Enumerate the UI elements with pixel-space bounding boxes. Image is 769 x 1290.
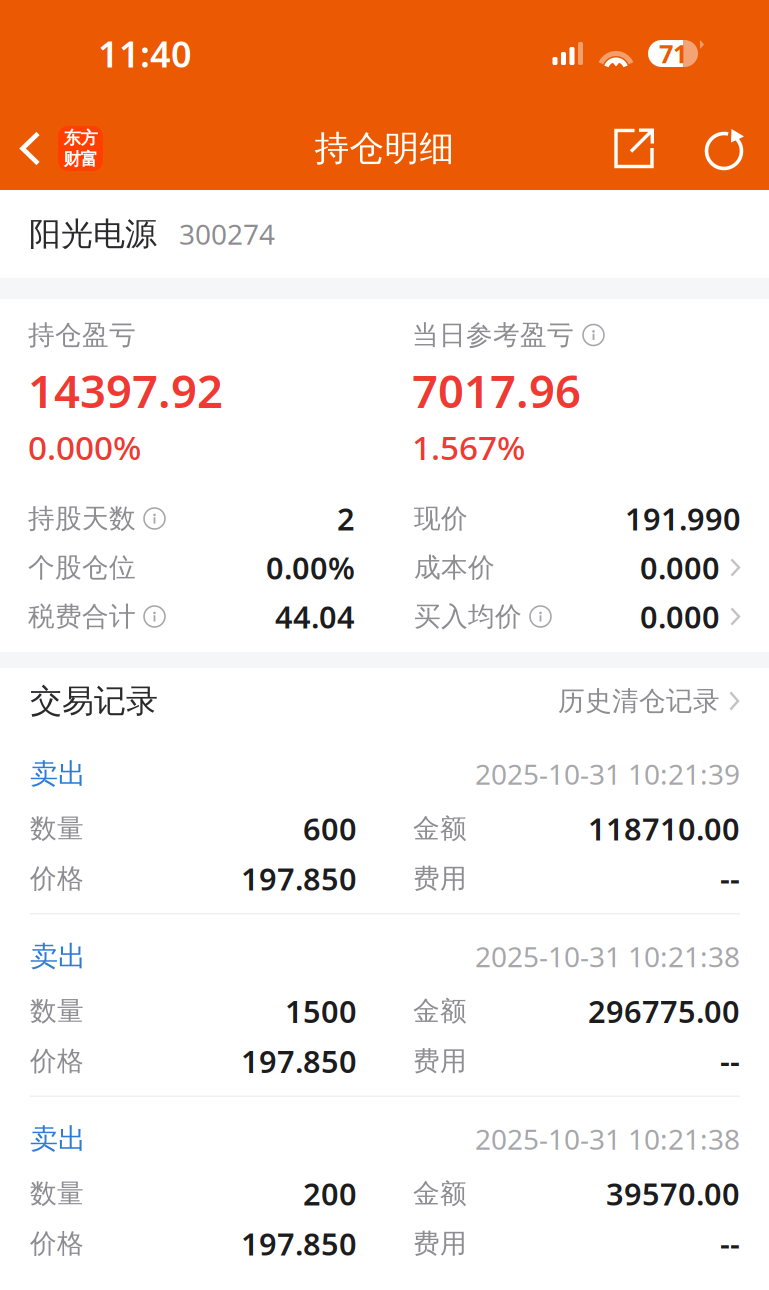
staticText: 费用 xyxy=(413,1045,467,1077)
staticText: 费用 xyxy=(413,1227,467,1260)
staticText: 金额 xyxy=(413,995,467,1027)
staticText: -- xyxy=(720,1223,740,1264)
button[interactable]: 返回 东方财富 xyxy=(0,106,119,190)
staticText: -- xyxy=(720,1041,740,1081)
staticText: 价格 xyxy=(30,862,84,895)
staticText: 200 xyxy=(303,1173,357,1214)
staticText: -- xyxy=(720,858,740,899)
staticText: 2025-10-31 10:21:38 xyxy=(475,938,740,975)
staticText: 191.990 xyxy=(625,498,741,539)
staticText: 持仓明细 xyxy=(314,127,454,170)
staticText: 0.000 xyxy=(640,547,720,588)
staticText: 300274 xyxy=(179,215,275,253)
staticText: 持股天数 xyxy=(28,502,136,535)
button[interactable]: 分享 xyxy=(587,106,681,190)
staticText: 财富 xyxy=(63,148,97,170)
staticText: 2025-10-31 10:21:38 xyxy=(475,1120,740,1158)
staticText: 金额 xyxy=(413,812,467,845)
staticText: 0.00% xyxy=(266,547,355,588)
staticText: 2 xyxy=(337,498,355,539)
button[interactable]: 买入均价 xyxy=(414,592,741,641)
staticText: 买入均价 xyxy=(414,600,522,633)
staticText: 当日参考盈亏 xyxy=(412,319,574,351)
button[interactable]: 成本价 xyxy=(414,543,741,592)
button[interactable]: 历史清仓记录 xyxy=(558,685,740,717)
staticText: 历史清仓记录 xyxy=(558,685,720,717)
staticText: 44.04 xyxy=(275,596,355,637)
staticText: 71 xyxy=(659,37,687,70)
staticText: 东方 xyxy=(63,127,97,148)
staticText: 个股仓位 xyxy=(28,551,136,584)
staticText: 数量 xyxy=(30,995,84,1027)
staticText: 费用 xyxy=(413,862,467,895)
staticText: 1500 xyxy=(285,991,357,1031)
staticText: 成本价 xyxy=(414,551,495,584)
staticText: 0.000 xyxy=(640,596,720,637)
staticText: 7017.96 xyxy=(412,360,581,421)
staticText: 197.850 xyxy=(241,1041,357,1081)
staticText: 税费合计 xyxy=(28,600,136,633)
staticText: 600 xyxy=(303,808,357,849)
staticText: 数量 xyxy=(30,1177,84,1210)
button[interactable]: 刷新 xyxy=(681,106,767,190)
staticText: 价格 xyxy=(30,1227,84,1260)
staticText: 1.567% xyxy=(412,425,525,469)
staticText: 11:40 xyxy=(98,30,192,77)
staticText: 197.850 xyxy=(241,858,357,899)
staticText: 现价 xyxy=(414,502,468,535)
staticText: 卖出 xyxy=(30,939,86,974)
staticText: 39570.00 xyxy=(606,1173,740,1214)
staticText: 价格 xyxy=(30,1045,84,1077)
staticText: 118710.00 xyxy=(588,808,740,849)
staticText: 2025-10-31 10:21:39 xyxy=(475,755,740,793)
staticText: 持仓盈亏 xyxy=(28,319,136,351)
staticText: 0.000% xyxy=(28,425,141,469)
staticText: 金额 xyxy=(413,1177,467,1210)
staticText: 14397.92 xyxy=(28,360,223,421)
staticText: 交易记录 xyxy=(30,681,158,721)
staticText: 卖出 xyxy=(30,1122,86,1156)
staticText: 卖出 xyxy=(30,757,86,791)
staticText: 296775.00 xyxy=(588,991,740,1031)
staticText: 阳光电源 xyxy=(29,214,157,254)
staticText: 数量 xyxy=(30,812,84,845)
staticText: 197.850 xyxy=(241,1223,357,1264)
